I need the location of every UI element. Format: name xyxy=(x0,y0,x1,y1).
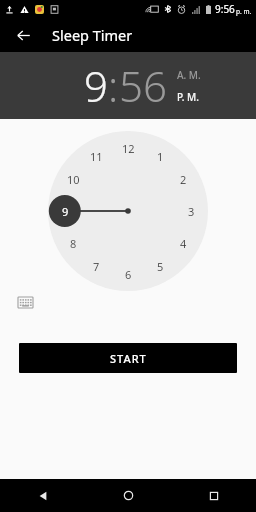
button[interactable]: 1 xyxy=(149,145,171,167)
staticText: START xyxy=(110,351,147,366)
button[interactable]: 12 xyxy=(117,137,139,159)
button[interactable]: 4 xyxy=(172,232,194,254)
button[interactable]: 7 xyxy=(85,255,107,277)
button[interactable]: 9 xyxy=(84,57,108,114)
button[interactable]: 56 xyxy=(119,57,167,114)
button[interactable]: A. M. xyxy=(177,68,201,82)
button[interactable]: 10 xyxy=(62,168,84,190)
staticText: 10 xyxy=(67,172,80,187)
staticText: 11 xyxy=(90,149,103,164)
staticText: 12 xyxy=(122,141,135,156)
button[interactable]: 11 xyxy=(85,145,107,167)
button[interactable]: Recent apps xyxy=(171,479,256,512)
button[interactable]: P. M. xyxy=(177,90,200,104)
button[interactable]: START xyxy=(19,343,237,373)
button[interactable]: 6 xyxy=(117,263,139,285)
staticText: p. m. xyxy=(236,7,252,16)
staticText: 4 xyxy=(180,236,187,251)
button[interactable]: Back xyxy=(0,479,86,512)
button[interactable]: 2 xyxy=(172,168,194,190)
staticText: 9 xyxy=(62,204,69,219)
button[interactable]: 8 xyxy=(62,232,84,254)
staticText: 3 xyxy=(188,204,195,219)
button[interactable]: Home xyxy=(86,479,171,512)
staticText: : xyxy=(108,57,119,114)
staticText: Sleep Timer xyxy=(52,25,133,45)
staticText: A. M. xyxy=(177,68,201,82)
staticText: P. M. xyxy=(177,90,200,104)
staticText: 7 xyxy=(93,259,100,274)
button[interactable]: 9 xyxy=(54,200,76,222)
button[interactable]: Switch to text input xyxy=(15,294,35,310)
button[interactable]: 3 xyxy=(180,200,202,222)
button[interactable]: 5 xyxy=(149,255,171,277)
staticText: 5 xyxy=(157,259,164,274)
staticText: 1 xyxy=(157,149,164,164)
button[interactable]: 12 xyxy=(48,131,208,291)
staticText: 8 xyxy=(70,236,77,251)
staticText: 9:56 xyxy=(215,2,235,16)
staticText: 9 xyxy=(84,57,108,114)
staticText: 6 xyxy=(125,267,132,282)
staticText: 2 xyxy=(180,172,187,187)
button[interactable]: Back xyxy=(10,22,36,48)
staticText: 56 xyxy=(119,57,167,114)
